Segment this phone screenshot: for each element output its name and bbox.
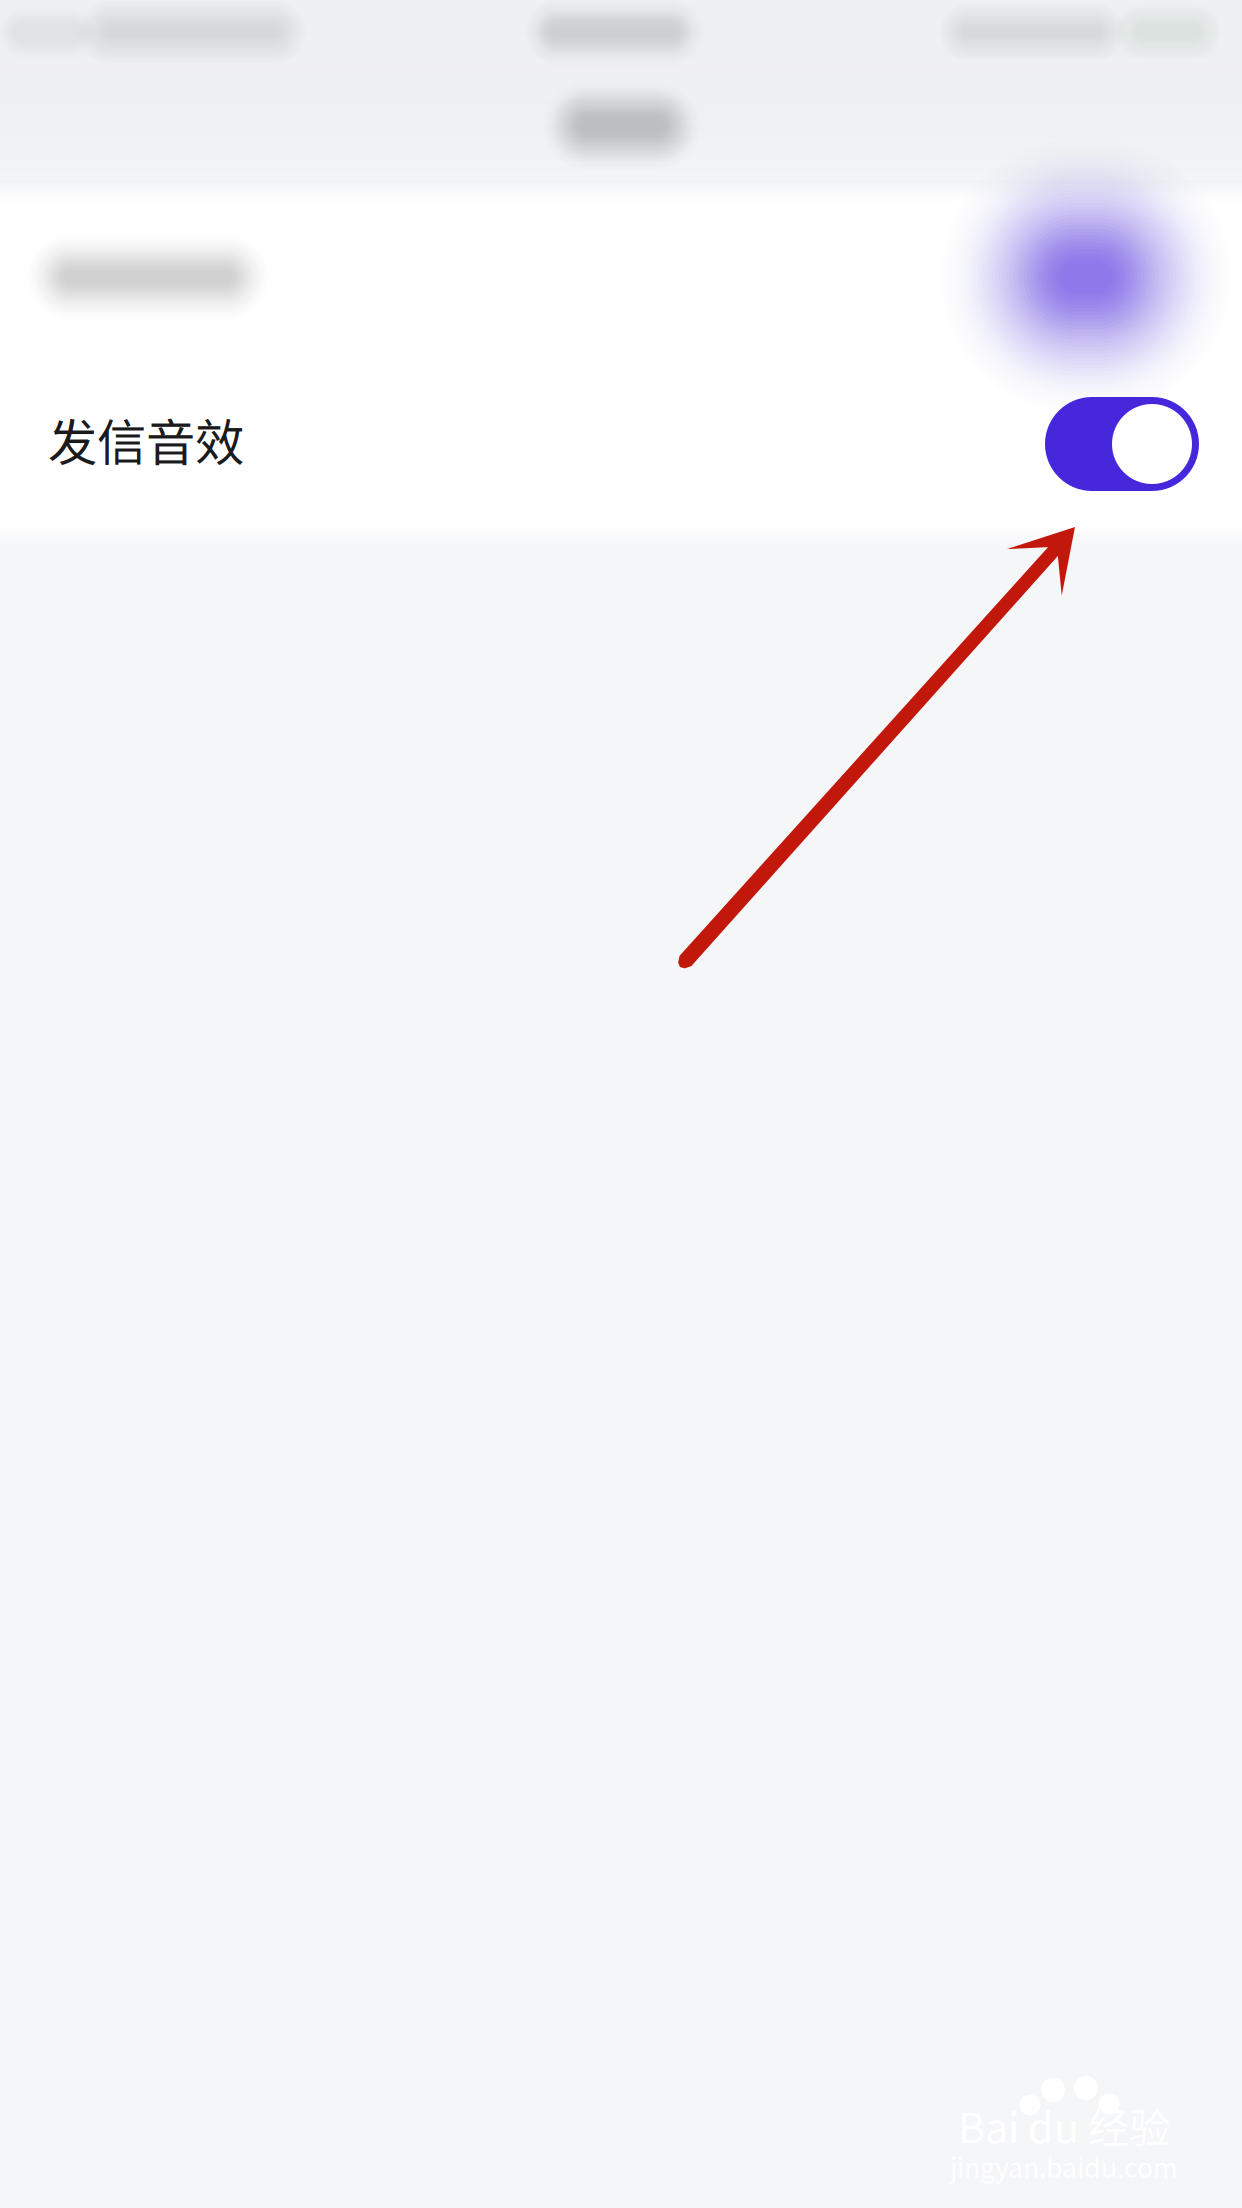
staticText: 发信音效 [48, 403, 244, 475]
staticText: Bai du 经验 [958, 2095, 1170, 2155]
button[interactable]: 发信音效 [0, 364, 1242, 514]
